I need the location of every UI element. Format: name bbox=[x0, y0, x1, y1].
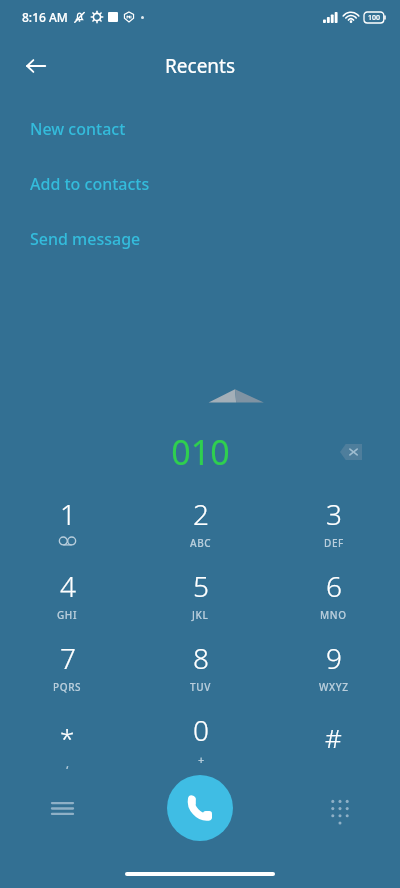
staticText: DEF bbox=[324, 536, 344, 550]
staticText: 010 bbox=[171, 429, 230, 475]
button[interactable]: Backspace bbox=[330, 431, 372, 473]
staticText: 7 bbox=[60, 639, 76, 677]
button[interactable]: 1 bbox=[0, 492, 134, 564]
staticText: 4 bbox=[60, 567, 76, 605]
staticText: JKL bbox=[192, 608, 209, 622]
staticText: 8 bbox=[193, 639, 209, 677]
button[interactable]: Send message bbox=[0, 222, 400, 255]
button[interactable]: 7 bbox=[0, 636, 134, 708]
staticText: 2 bbox=[193, 495, 209, 533]
staticText: 9 bbox=[326, 639, 342, 677]
button[interactable]: 6 bbox=[267, 564, 400, 636]
staticText: + bbox=[198, 752, 205, 767]
button[interactable]: 2 bbox=[134, 492, 267, 564]
button[interactable]: Dialpad bbox=[318, 786, 362, 830]
staticText: , bbox=[66, 756, 70, 771]
button[interactable]: 4 bbox=[0, 564, 134, 636]
staticText: 0 bbox=[193, 711, 209, 749]
staticText: * bbox=[60, 720, 75, 755]
staticText: PQRS bbox=[53, 680, 82, 694]
staticText: 3 bbox=[326, 495, 342, 533]
staticText: Add to contacts bbox=[30, 173, 150, 195]
button[interactable]: Add to contacts bbox=[0, 167, 400, 200]
staticText: 1 bbox=[60, 495, 76, 533]
staticText: 100 bbox=[368, 13, 381, 23]
staticText: New contact bbox=[30, 118, 126, 140]
staticText: 5 bbox=[193, 567, 209, 605]
button[interactable]: 8 bbox=[134, 636, 267, 708]
button[interactable]: 0 bbox=[134, 708, 267, 774]
button[interactable]: * bbox=[0, 708, 134, 774]
button[interactable]: Back bbox=[14, 44, 58, 88]
staticText: Send message bbox=[30, 228, 141, 250]
button[interactable]: Call bbox=[167, 775, 233, 841]
button[interactable]: 3 bbox=[267, 492, 400, 564]
staticText: 8:16 AM bbox=[22, 9, 68, 25]
staticText: MNO bbox=[320, 608, 347, 622]
button[interactable]: 9 bbox=[267, 636, 400, 708]
button[interactable]: 5 bbox=[134, 564, 267, 636]
button[interactable]: Menu bbox=[40, 786, 84, 830]
staticText: TUV bbox=[190, 680, 211, 694]
staticText: ABC bbox=[190, 536, 212, 550]
staticText: # bbox=[325, 720, 342, 755]
staticText: Recents bbox=[165, 53, 236, 79]
staticText: 6 bbox=[326, 567, 342, 605]
staticText: WXYZ bbox=[319, 680, 349, 694]
button[interactable]: New contact bbox=[0, 112, 400, 145]
staticText: GHI bbox=[57, 608, 78, 622]
button[interactable]: # bbox=[267, 708, 400, 774]
